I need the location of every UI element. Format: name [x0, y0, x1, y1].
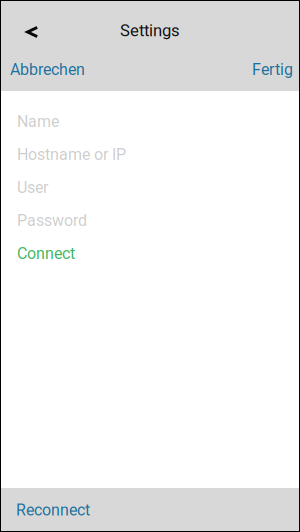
button[interactable]: Reconnect	[0, 488, 300, 532]
staticText: Settings	[120, 21, 180, 40]
button[interactable]: User	[0, 171, 300, 204]
button[interactable]: Name	[0, 105, 300, 138]
button[interactable]: Connect	[0, 237, 300, 270]
staticText: Fertig	[252, 60, 293, 79]
button[interactable]: Hostname or IP	[0, 138, 300, 171]
staticText: Abbrechen	[10, 60, 85, 79]
staticText: Connect	[17, 244, 75, 263]
staticText: User	[17, 178, 48, 197]
staticText: Hostname or IP	[17, 145, 126, 164]
staticText: Password	[17, 211, 87, 230]
button[interactable]: Back	[0, 0, 50, 48]
staticText: Name	[17, 112, 59, 131]
staticText: Reconnect	[16, 501, 90, 519]
button[interactable]: Fertig	[252, 48, 300, 91]
button[interactable]: Password	[0, 204, 300, 237]
button[interactable]: Abbrechen	[0, 48, 85, 91]
